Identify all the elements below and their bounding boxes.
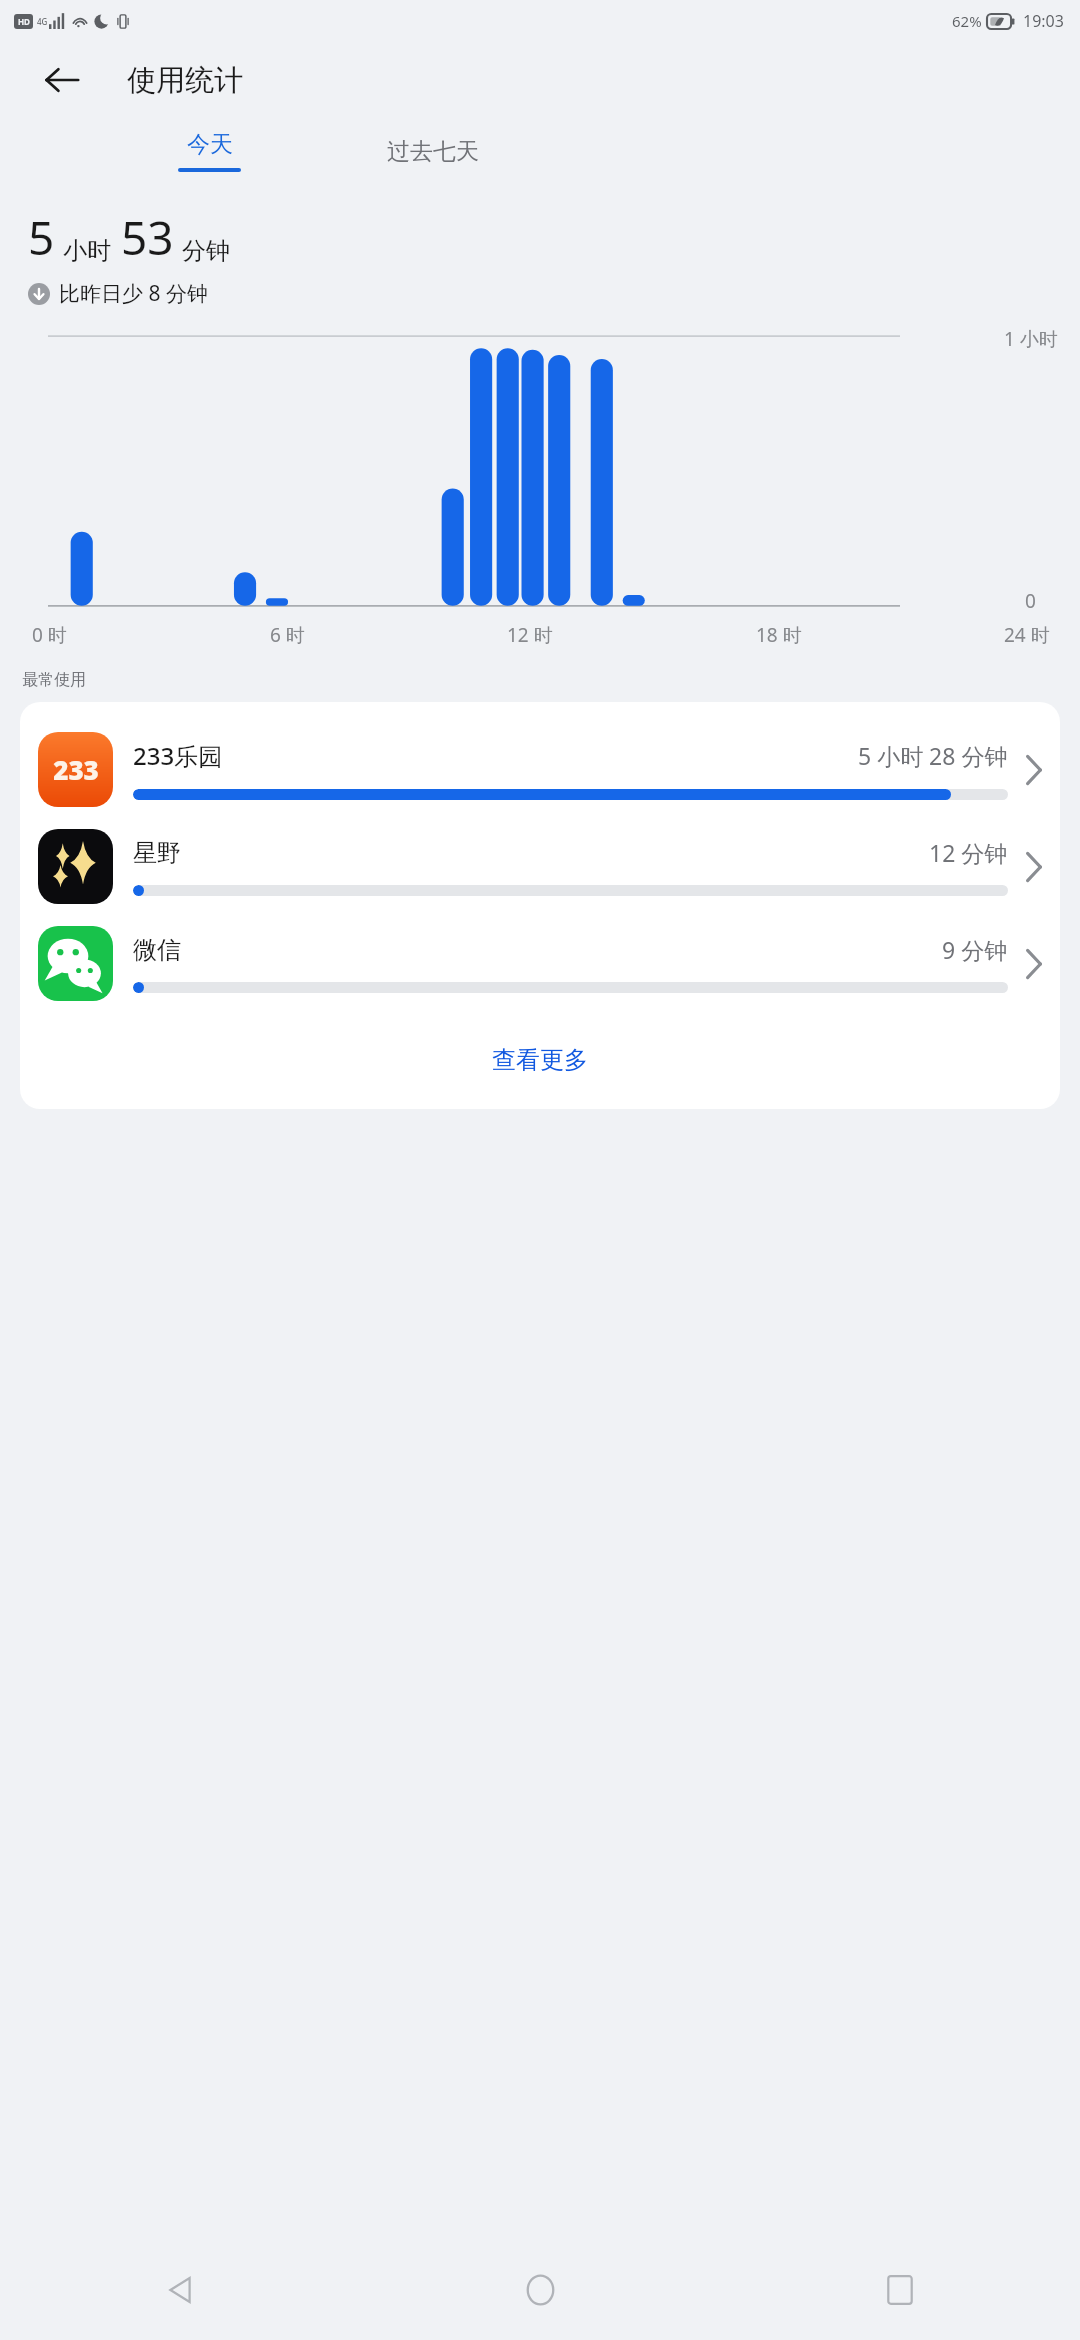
- staticText: 18 时: [756, 622, 802, 648]
- staticText: 5: [28, 206, 55, 269]
- button[interactable]: 返回: [34, 52, 90, 108]
- staticText: 6 时: [270, 622, 305, 648]
- staticText: 微信: [133, 935, 181, 965]
- button[interactable]: 过去七天: [369, 127, 497, 176]
- staticText: 9 分钟: [942, 934, 1008, 965]
- staticText: 0: [1025, 588, 1036, 614]
- staticText: HD: [18, 16, 30, 27]
- staticText: 53: [121, 206, 174, 269]
- staticText: 今天: [187, 130, 233, 159]
- staticText: 24 时: [1004, 622, 1050, 648]
- staticText: 4G: [37, 16, 48, 27]
- button[interactable]: 微信: [20, 926, 1060, 1001]
- button[interactable]: 今天: [160, 126, 259, 176]
- staticText: 星野: [133, 838, 181, 868]
- staticText: 使用统计: [127, 62, 243, 99]
- staticText: 62%: [952, 11, 982, 31]
- staticText: 小时: [63, 236, 111, 266]
- staticText: 12 时: [507, 622, 553, 648]
- staticText: 233: [53, 752, 99, 787]
- staticText: 分钟: [182, 236, 230, 266]
- staticText: 比昨日少 8 分钟: [59, 279, 208, 308]
- button[interactable]: 查看更多: [20, 1031, 1060, 1089]
- staticText: 查看更多: [492, 1045, 588, 1075]
- button[interactable]: 返回: [0, 2240, 360, 2340]
- staticText: 最常使用: [22, 670, 86, 690]
- button[interactable]: 星野: [20, 829, 1060, 904]
- button[interactable]: 主屏幕: [360, 2240, 720, 2340]
- staticText: 233乐园: [133, 739, 223, 772]
- staticText: 5 小时 28 分钟: [858, 740, 1008, 771]
- staticText: 1 小时: [1004, 326, 1058, 352]
- button[interactable]: 最近任务: [720, 2240, 1080, 2340]
- staticText: 0 时: [32, 622, 67, 648]
- staticText: 12 分钟: [929, 837, 1008, 868]
- button[interactable]: 233: [20, 732, 1060, 807]
- staticText: 19:03: [1023, 10, 1064, 32]
- staticText: 过去七天: [387, 137, 479, 166]
